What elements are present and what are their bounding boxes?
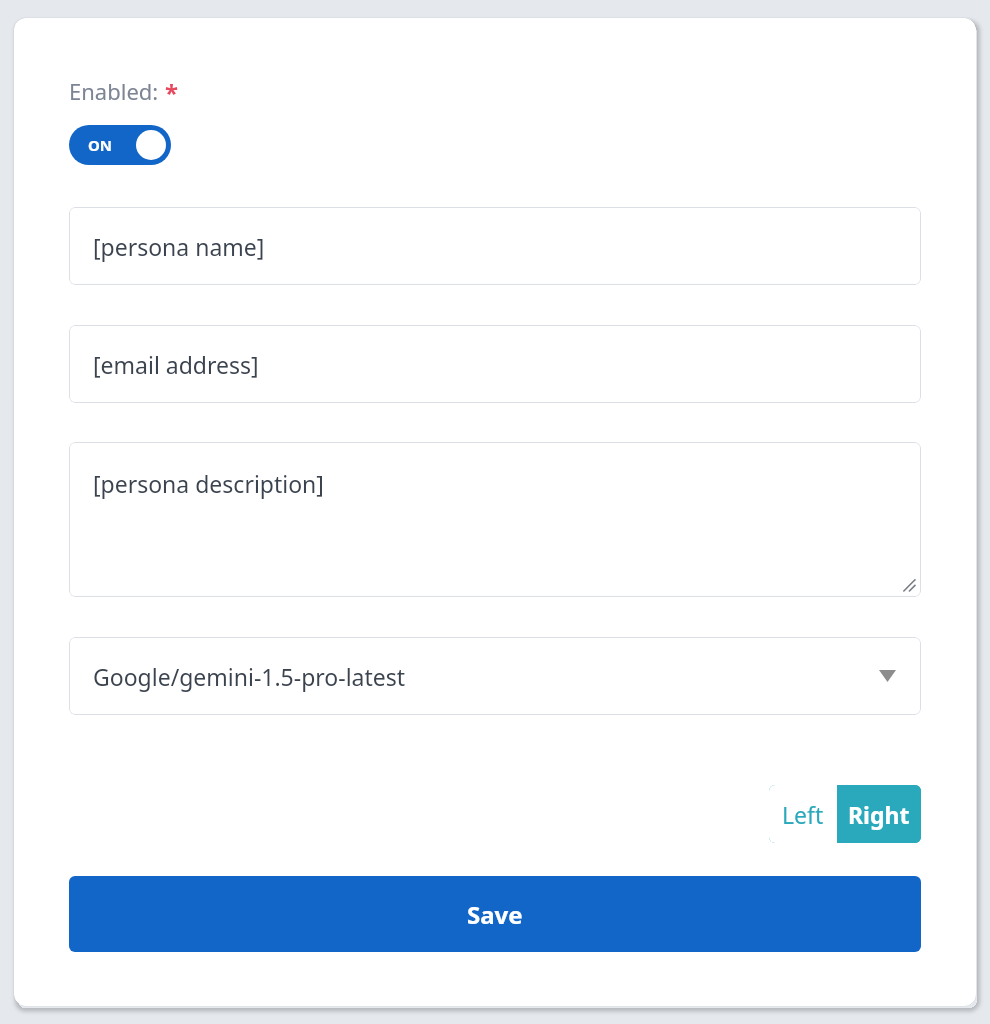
staticText: ON (88, 135, 113, 155)
button[interactable]: Left (769, 785, 837, 843)
staticText: [persona name] (93, 231, 265, 262)
staticText: Save (467, 898, 523, 931)
button[interactable]: Save (69, 876, 921, 952)
button[interactable]: Right (837, 785, 921, 843)
staticText: Enabled: (69, 76, 159, 106)
button[interactable]: [persona description] (69, 442, 921, 597)
button[interactable]: [persona name] (69, 207, 921, 285)
staticText: Google/gemini-1.5-pro-latest (93, 661, 406, 692)
staticText: Left (782, 799, 824, 830)
staticText: [email address] (93, 349, 259, 380)
button[interactable]: [email address] (69, 325, 921, 403)
staticText: [persona description] (93, 468, 324, 499)
button[interactable]: Model selector (69, 637, 921, 715)
staticText: * (165, 76, 179, 109)
button[interactable]: Enabled toggle, on (69, 125, 171, 165)
staticText: Right (848, 799, 910, 830)
